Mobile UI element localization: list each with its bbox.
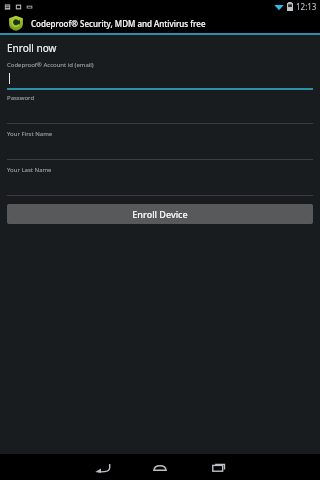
staticText: Password [7,94,35,102]
button[interactable] [7,69,313,90]
staticText: Codeproof® Security, MDM and Antivirus f… [31,18,206,29]
staticText: Your Last Name [7,166,52,174]
button[interactable]: Home [131,454,189,480]
button[interactable]: Recent apps [189,454,247,480]
button[interactable] [7,138,313,160]
staticText: Enroll now [7,41,57,55]
staticText: Codeproof® Account id (email) [7,61,94,69]
button[interactable]: Back [73,454,131,480]
button[interactable]: Enroll Device [7,204,313,224]
button[interactable] [7,174,313,196]
staticText: Your First Name [7,130,53,138]
staticText: Enroll Device [132,208,188,220]
staticText: 12:13 [296,1,317,12]
button[interactable] [7,102,313,124]
